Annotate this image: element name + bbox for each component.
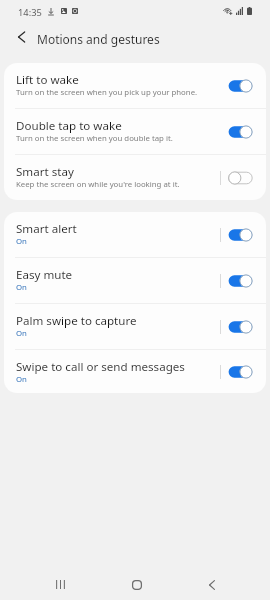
staticText: Turn on the screen when you pick up your… bbox=[16, 87, 198, 98]
button[interactable]: Back bbox=[191, 564, 232, 600]
staticText: On bbox=[16, 236, 27, 247]
button[interactable]: Toggle on bbox=[227, 76, 254, 96]
button[interactable]: Double tap to wake bbox=[4, 109, 266, 154]
button[interactable]: Navigate up bbox=[11, 27, 31, 47]
button[interactable]: Lift to wake bbox=[4, 63, 266, 108]
staticText: Lift to wake bbox=[16, 72, 79, 88]
button[interactable]: Easy mute bbox=[4, 258, 266, 303]
staticText: Smart stay bbox=[16, 164, 74, 180]
button[interactable]: Toggle off bbox=[227, 168, 254, 188]
button[interactable]: Toggle on bbox=[227, 317, 254, 337]
button[interactable]: Toggle on bbox=[227, 271, 254, 291]
staticText: 14:35 bbox=[18, 6, 42, 19]
staticText: On bbox=[16, 374, 27, 385]
button[interactable]: Toggle on bbox=[227, 122, 254, 142]
staticText: On bbox=[16, 282, 27, 293]
button[interactable]: Smart alert bbox=[4, 212, 266, 257]
staticText: Palm swipe to capture bbox=[16, 313, 137, 329]
button[interactable]: Palm swipe to capture bbox=[4, 304, 266, 349]
button[interactable]: Toggle on bbox=[227, 362, 254, 382]
button[interactable]: Swipe to call or send messages bbox=[4, 350, 266, 393]
staticText: Swipe to call or send messages bbox=[16, 359, 185, 375]
staticText: Smart alert bbox=[16, 221, 77, 237]
staticText: Easy mute bbox=[16, 267, 73, 283]
staticText: On bbox=[16, 328, 27, 339]
button[interactable]: Toggle on bbox=[227, 225, 254, 245]
button[interactable]: Smart stay bbox=[4, 155, 266, 200]
button[interactable]: Home bbox=[116, 564, 157, 600]
staticText: Double tap to wake bbox=[16, 118, 122, 134]
staticText: Keep the screen on while you're looking … bbox=[16, 179, 180, 190]
staticText: Turn on the screen when you double tap i… bbox=[16, 133, 173, 144]
button[interactable]: Recent apps bbox=[40, 564, 81, 600]
staticText: Motions and gestures bbox=[37, 31, 160, 47]
